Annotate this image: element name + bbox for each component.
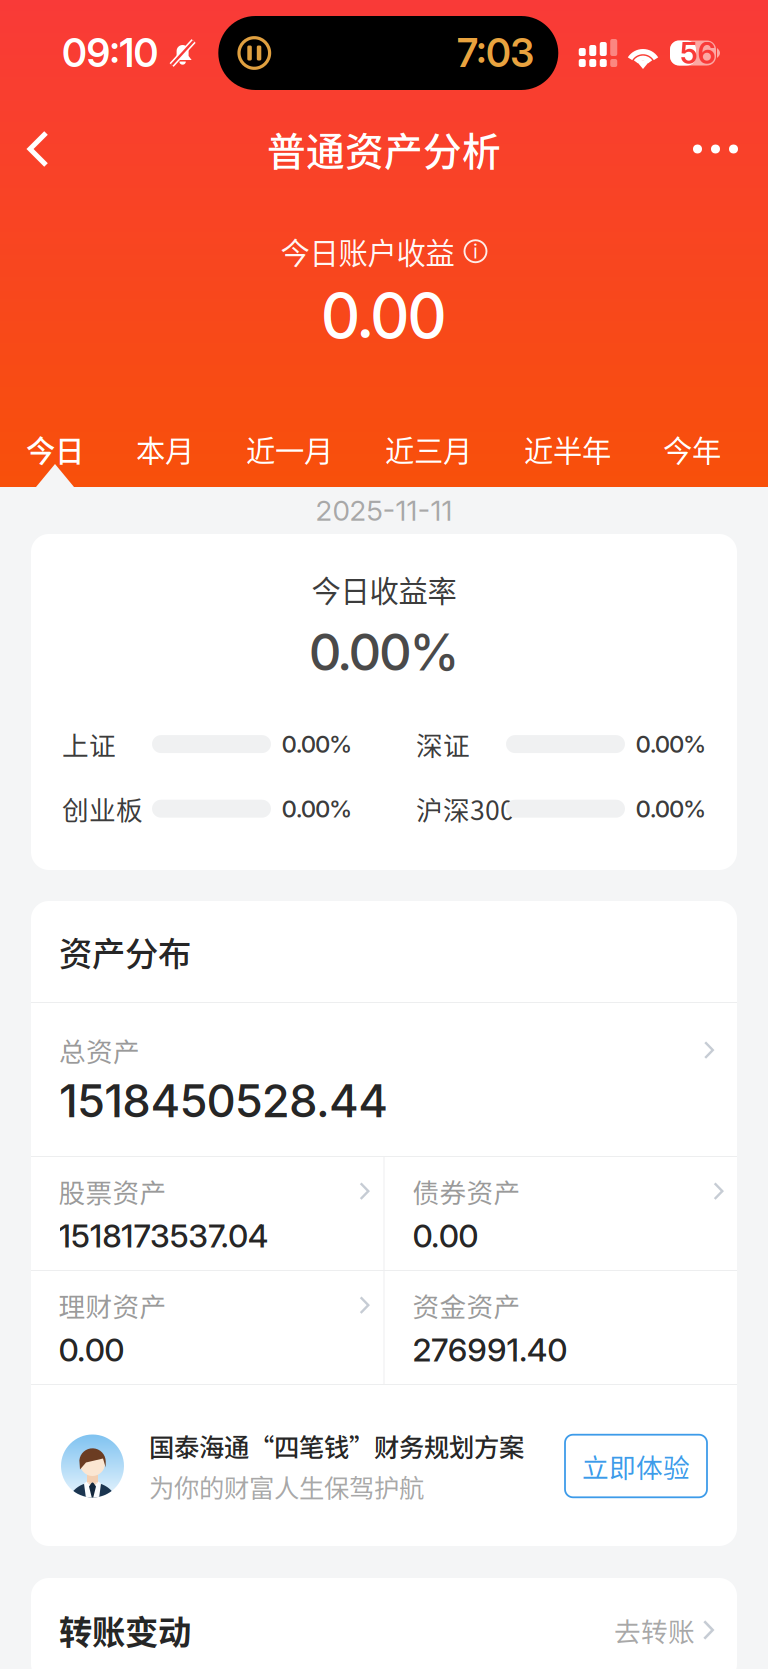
- staticText: 债券资产: [412, 1172, 520, 1210]
- staticText: 创业板: [62, 789, 143, 828]
- button[interactable]: More options: [669, 120, 768, 177]
- staticText: 股票资产: [58, 1172, 166, 1210]
- staticText: 本月: [136, 428, 194, 470]
- button[interactable]: 本月: [110, 419, 220, 479]
- button[interactable]: 资金资产: [384, 1271, 737, 1384]
- staticText: 今日: [26, 428, 84, 470]
- staticText: 09:10: [62, 30, 159, 76]
- staticText: 今日账户收益: [280, 230, 454, 272]
- button[interactable]: 近一月: [220, 419, 359, 479]
- staticText: 去转账: [614, 1611, 695, 1649]
- button[interactable]: 总资产: [31, 1003, 737, 1156]
- staticText: 0.00: [321, 278, 447, 353]
- staticText: 为你的财富人生保驾护航: [149, 1468, 424, 1505]
- staticText: 资金资产: [412, 1286, 520, 1324]
- staticText: 普通资产分析: [267, 121, 501, 177]
- staticText: 今年: [663, 428, 721, 470]
- button[interactable]: 债券资产: [384, 1157, 737, 1270]
- staticText: 56: [680, 35, 715, 71]
- staticText: 今日收益率: [311, 568, 456, 610]
- staticText: 国泰海通“四笔钱”财务规划方案: [149, 1427, 524, 1464]
- staticText: 理财资产: [58, 1286, 166, 1324]
- staticText: 0.00%: [282, 794, 352, 823]
- staticText: 近一月: [246, 428, 333, 470]
- staticText: 转账变动: [59, 1606, 191, 1654]
- staticText: 深证: [416, 725, 470, 763]
- staticText: 1518450528.44: [59, 1073, 388, 1128]
- button[interactable]: 去转账: [614, 1611, 714, 1649]
- staticText: 276991.40: [412, 1330, 567, 1369]
- staticText: 资产分布: [59, 927, 191, 976]
- button[interactable]: 立即体验: [565, 1435, 707, 1497]
- staticText: 0.00: [58, 1330, 124, 1369]
- button[interactable]: 近半年: [498, 419, 637, 479]
- staticText: 0.00%: [636, 730, 706, 759]
- staticText: 0.00%: [636, 794, 706, 823]
- staticText: 1518173537.04: [58, 1216, 269, 1255]
- staticText: 0.00: [412, 1216, 478, 1255]
- button[interactable]: 今日: [0, 419, 110, 479]
- button[interactable]: Back: [0, 112, 74, 186]
- button[interactable]: 近三月: [359, 419, 498, 479]
- staticText: 上证: [62, 725, 116, 763]
- staticText: 0.00%: [282, 730, 352, 759]
- staticText: 总资产: [59, 1031, 140, 1069]
- button[interactable]: 理财资产: [30, 1271, 383, 1384]
- staticText: 2025-11-11: [315, 494, 452, 527]
- staticText: 近三月: [385, 428, 472, 470]
- button[interactable]: 今年: [637, 419, 747, 479]
- button[interactable]: 股票资产: [30, 1157, 383, 1270]
- staticText: 7:03: [457, 30, 534, 76]
- staticText: 沪深300: [416, 789, 515, 828]
- staticText: 立即体验: [582, 1447, 690, 1485]
- staticText: 0.00%: [309, 621, 459, 683]
- staticText: i: [473, 239, 478, 263]
- staticText: 近半年: [524, 428, 611, 470]
